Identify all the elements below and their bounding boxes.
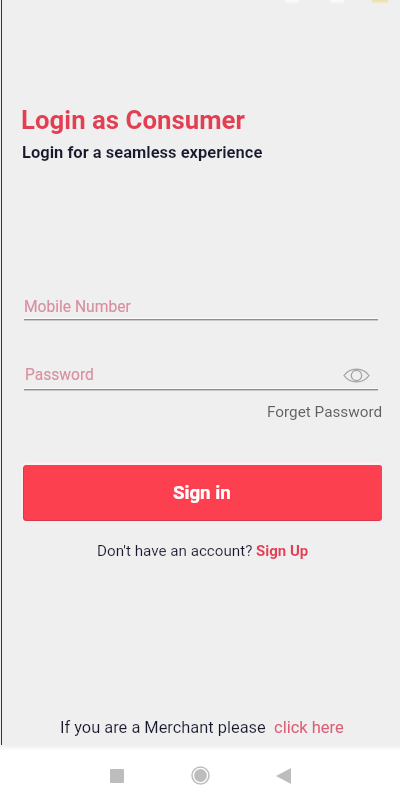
staticText: Password — [25, 366, 94, 384]
button[interactable]: Sign Up — [256, 542, 309, 560]
staticText: Mobile Number — [24, 298, 131, 316]
button[interactable]: Back — [240, 751, 326, 800]
button[interactable]: Recent apps — [74, 751, 160, 800]
button[interactable]: click here — [274, 718, 344, 737]
staticText: Login as Consumer — [21, 105, 245, 135]
button[interactable]: Forget Password — [267, 403, 383, 421]
button[interactable]: Home — [157, 751, 243, 800]
button[interactable]: Sign in — [24, 465, 382, 520]
staticText: If you are a Merchant please — [60, 718, 266, 737]
staticText: Sign in — [173, 482, 231, 504]
staticText: Login for a seamless experience — [22, 143, 263, 162]
staticText: Don't have an account? — [97, 542, 253, 560]
button[interactable]: Show password — [338, 359, 375, 391]
